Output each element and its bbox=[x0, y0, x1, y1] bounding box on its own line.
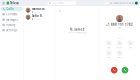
button[interactable]: Call bbox=[122, 67, 128, 73]
staticText: Contacts bbox=[6, 12, 17, 16]
button[interactable]: Messages bbox=[1, 17, 23, 22]
staticText: Search Anything... bbox=[52, 2, 64, 4]
staticText: Marcus W. bbox=[32, 7, 45, 11]
button[interactable]: Hold bbox=[127, 40, 133, 49]
staticText: 00:42 bbox=[118, 37, 122, 39]
button[interactable]: Settings bbox=[1, 28, 23, 32]
button[interactable]: Marcus W. bbox=[24, 7, 55, 14]
staticText: Hi, James! bbox=[69, 28, 84, 31]
staticText: Settings bbox=[6, 28, 17, 32]
button[interactable]: Calls bbox=[1, 7, 23, 11]
staticText: Calls bbox=[6, 7, 13, 11]
staticText: Mute bbox=[107, 47, 110, 49]
staticText: History bbox=[6, 23, 15, 27]
button[interactable]: Keypad bbox=[116, 40, 123, 49]
button[interactable]: Sofia R. bbox=[24, 14, 55, 21]
staticText: Add bbox=[107, 56, 110, 58]
staticText: Calling... bbox=[118, 27, 122, 29]
staticText: More bbox=[118, 56, 122, 58]
button[interactable]: Contacts bbox=[1, 12, 23, 16]
staticText: Keypad bbox=[117, 47, 123, 49]
staticText: Hold bbox=[129, 47, 132, 49]
button[interactable]: History bbox=[1, 23, 23, 27]
staticText: 12:04 PM bbox=[34, 11, 40, 13]
button[interactable]: More bbox=[116, 50, 123, 58]
staticText: +1 888 191 1782 bbox=[106, 23, 133, 26]
staticText: Teleco bbox=[10, 1, 19, 5]
staticText: Search a contact to start a call bbox=[67, 32, 86, 34]
staticText: Available bbox=[113, 2, 119, 4]
button[interactable]: End call bbox=[111, 67, 117, 73]
staticText: Sofia R. bbox=[32, 14, 43, 18]
button[interactable]: Menu bbox=[2, 1, 5, 5]
staticText: 11:31 AM bbox=[34, 18, 40, 20]
staticText: Jordan Lee bbox=[120, 2, 128, 4]
button[interactable]: Mute bbox=[106, 40, 112, 49]
staticText: Messages bbox=[6, 18, 18, 21]
button[interactable]: Add bbox=[106, 50, 112, 58]
